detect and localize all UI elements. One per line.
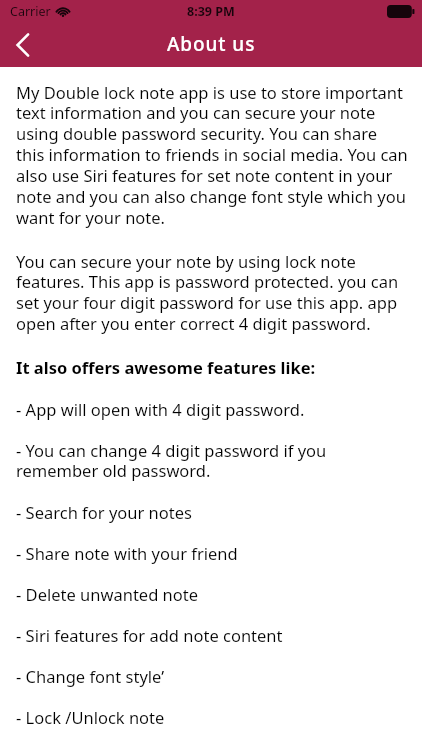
staticText: You can secure your note by using lock n… — [16, 250, 409, 335]
staticText: It also offers awesome features like: — [16, 356, 316, 378]
staticText: My Double lock note app is use to store … — [16, 81, 409, 229]
staticText: - You can change 4 digit password if you… — [16, 439, 409, 482]
staticText: Carrier — [10, 3, 51, 20]
staticText: About us — [167, 31, 256, 57]
staticText: - Search for your notes — [16, 501, 192, 523]
staticText: - App will open with 4 digit password. — [16, 398, 305, 420]
staticText: - Change font style’ — [16, 665, 165, 687]
staticText: - Delete unwanted note — [16, 583, 199, 605]
staticText: - Siri features for add note content — [16, 624, 283, 646]
button[interactable]: Back — [0, 22, 46, 67]
staticText: - Share note with your friend — [16, 542, 238, 564]
staticText: - Lock /Unlock note — [16, 706, 165, 728]
staticText: 8:39 PM — [187, 3, 235, 20]
